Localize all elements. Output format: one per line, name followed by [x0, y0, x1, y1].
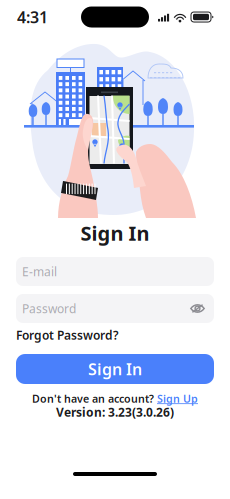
staticText: E-mail: [22, 263, 57, 279]
staticText: Password: [22, 300, 76, 316]
staticText: Sign In: [80, 220, 149, 246]
staticText: 4:31: [17, 6, 48, 28]
button[interactable]: Sign Up: [157, 391, 198, 406]
staticText: Don't have an account?: [32, 391, 154, 406]
staticText: Sign Up: [157, 391, 198, 406]
staticText: Forgot Password?: [16, 327, 119, 343]
button[interactable]: Forgot Password?: [16, 329, 119, 341]
staticText: Sign In: [88, 358, 142, 380]
staticText: Version: 3.23(3.0.26): [56, 404, 174, 420]
button[interactable]: Sign In: [16, 354, 214, 384]
